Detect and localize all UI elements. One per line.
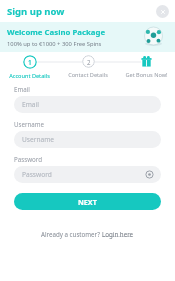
button[interactable]: Close: [156, 5, 169, 18]
staticText: Already a customer?: [41, 230, 102, 238]
button[interactable]: Welcome Casino Package: [0, 22, 175, 52]
staticText: Account Details: [9, 72, 50, 80]
staticText: 2: [87, 58, 91, 66]
staticText: NEXT: [78, 197, 97, 207]
staticText: Email: [22, 100, 39, 109]
staticText: Welcome Casino Package: [7, 27, 106, 38]
staticText: 100% up to €1000 + 300 Free Spins: [7, 40, 102, 48]
button[interactable]: Email: [14, 96, 161, 113]
staticText: Get Bonus Now!: [125, 71, 168, 79]
other: Get Bonus Now: [140, 55, 153, 68]
button[interactable]: Password: [14, 166, 161, 183]
staticText: Password: [22, 170, 52, 179]
staticText: Username: [22, 135, 55, 144]
button[interactable]: Show password: [145, 170, 154, 179]
staticText: Username: [14, 120, 45, 128]
button[interactable]: 1: [0, 52, 59, 80]
button[interactable]: Get Bonus Now: [117, 52, 175, 79]
button[interactable]: Login here: [102, 230, 134, 238]
button[interactable]: Username: [14, 131, 161, 148]
staticText: Contact Details: [68, 71, 108, 79]
staticText: Sign up now: [7, 5, 65, 18]
staticText: 1: [28, 58, 32, 67]
staticText: Email: [14, 85, 30, 93]
button[interactable]: NEXT: [14, 193, 161, 210]
staticText: Password: [14, 155, 42, 163]
button[interactable]: 2: [59, 52, 117, 79]
